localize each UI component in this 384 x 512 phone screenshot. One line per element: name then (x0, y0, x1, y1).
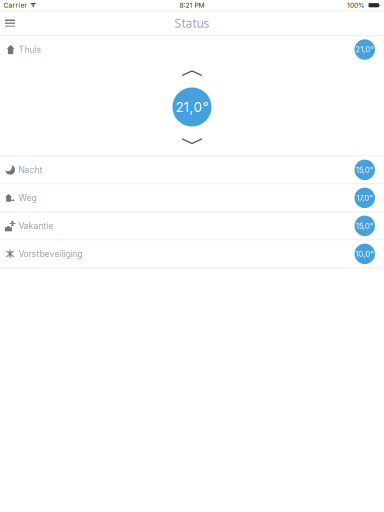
button[interactable]: Increase temperature (169, 70, 215, 76)
staticText: Nacht (18, 165, 42, 175)
button[interactable]: 17,0° (0, 184, 384, 211)
button[interactable]: Menu (0, 11, 20, 35)
staticText: 100% (347, 1, 365, 9)
button[interactable]: 21,0° (0, 36, 384, 63)
staticText: Weg (18, 193, 36, 203)
staticText: 15,0° (356, 165, 374, 175)
staticText: 15,0° (356, 221, 374, 231)
staticText: Status (174, 15, 209, 31)
staticText: 21,0° (355, 45, 374, 54)
staticText: 10,0° (355, 249, 374, 259)
button[interactable]: 10,0° (0, 240, 384, 267)
button[interactable]: 15,0° (0, 212, 384, 239)
button[interactable]: 15,0° (0, 156, 384, 183)
button[interactable]: Decrease temperature (169, 138, 215, 144)
staticText: 21,0° (175, 99, 208, 115)
staticText: Vakantie (18, 221, 53, 231)
staticText: Vorstbeveiliging (18, 249, 82, 259)
staticText: 17,0° (356, 193, 373, 203)
staticText: 8:21 PM (179, 1, 204, 9)
staticText: Thuis (18, 44, 41, 55)
staticText: Carrier (3, 1, 27, 9)
